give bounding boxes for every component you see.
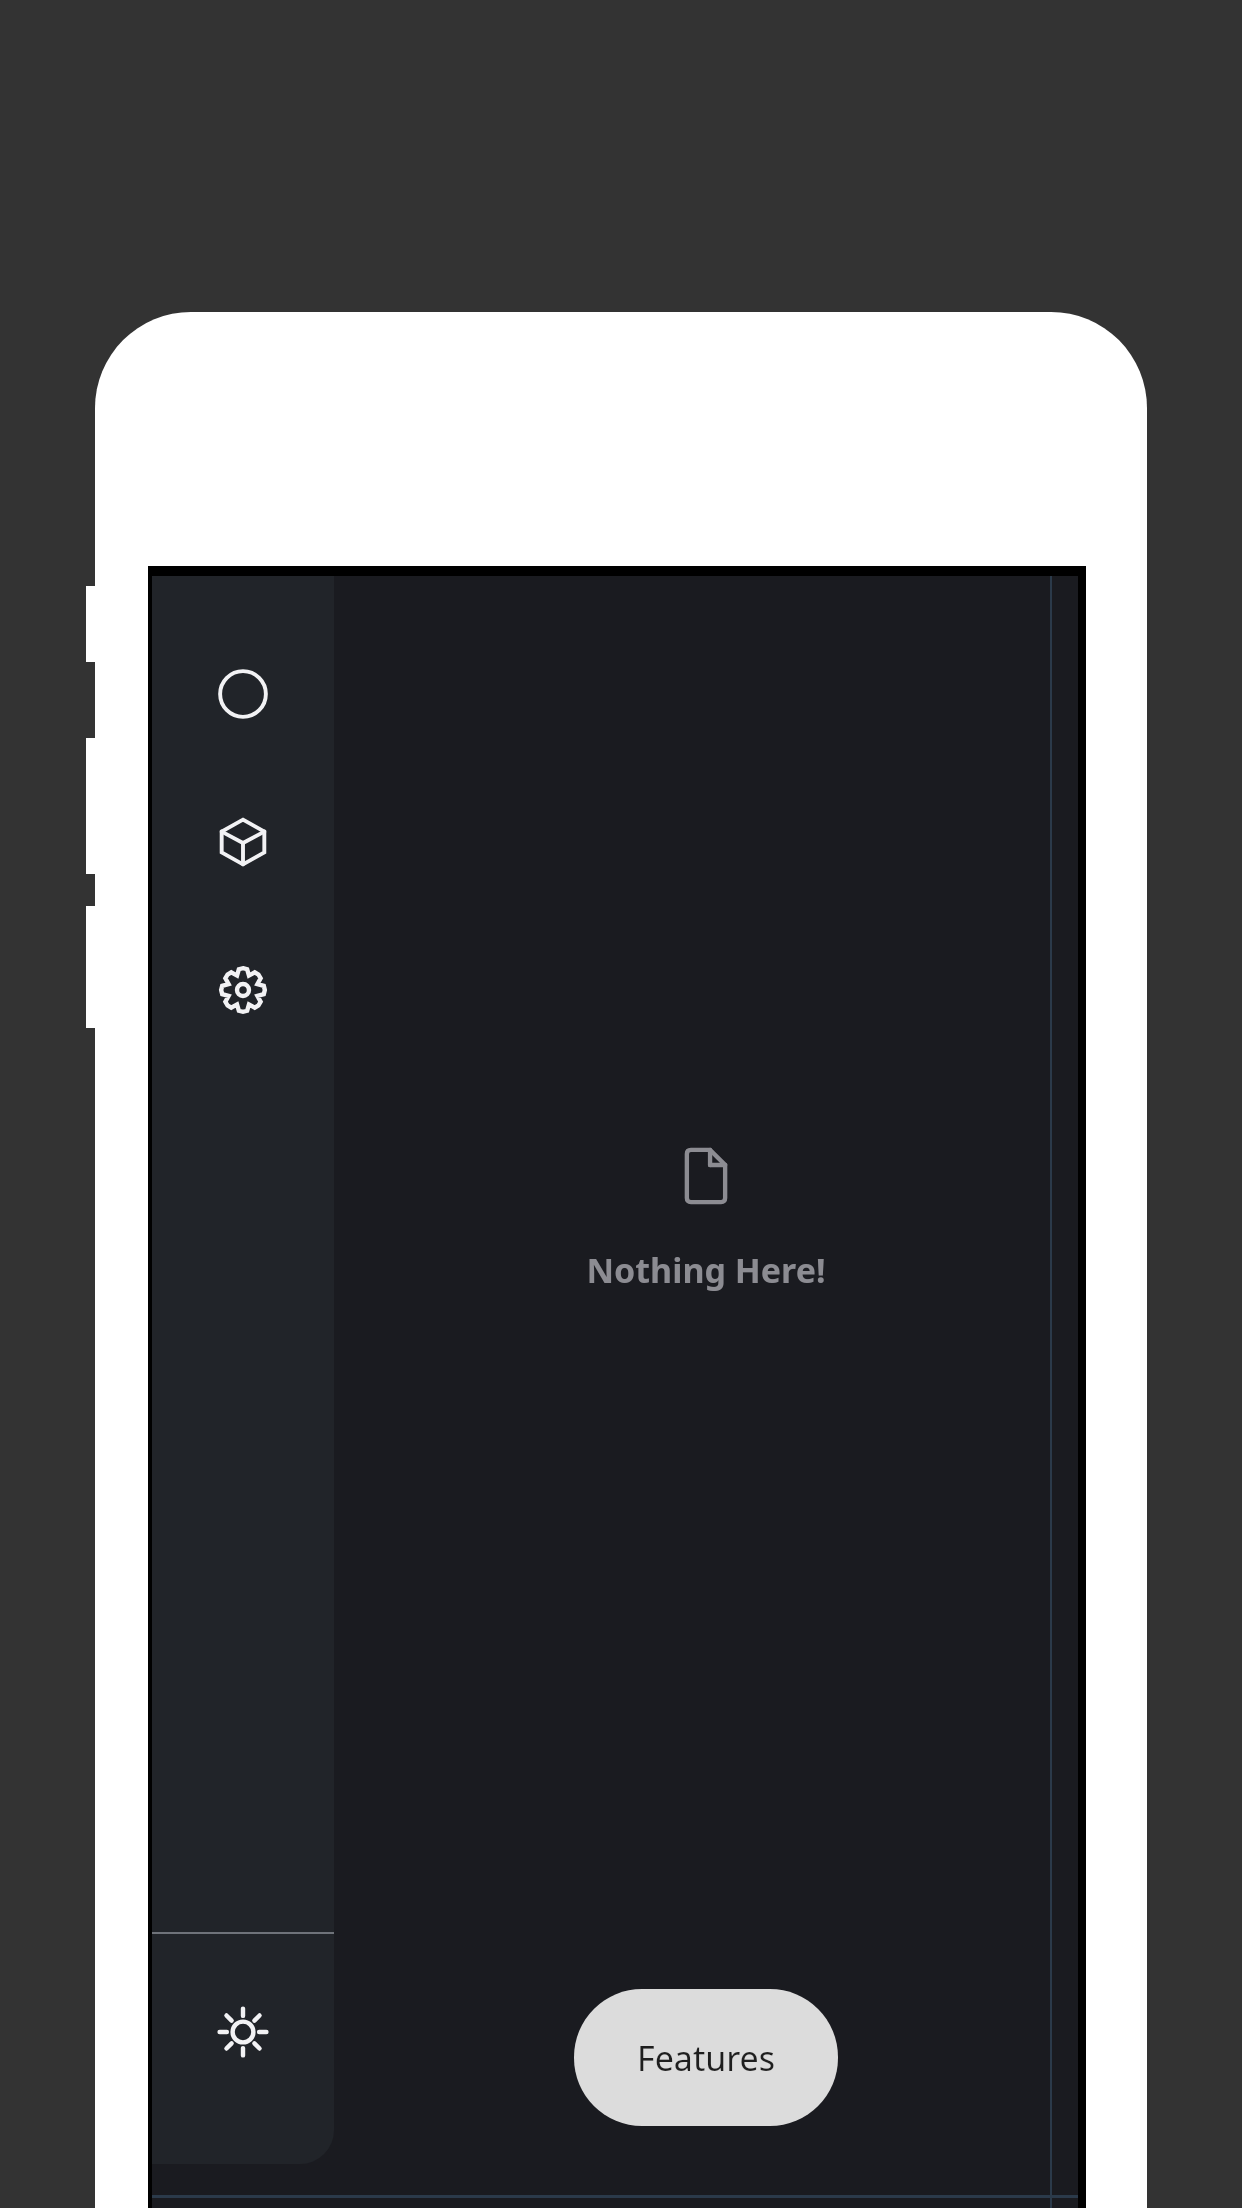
button[interactable]: Record [195,646,291,742]
button[interactable]: Packages [195,794,291,890]
button[interactable]: Settings [195,942,291,1038]
button[interactable]: Features [574,1989,838,2126]
staticText: Nothing Here! [586,1247,826,1293]
staticText: Features [637,2035,776,2081]
button[interactable]: Brightness [195,1984,291,2080]
